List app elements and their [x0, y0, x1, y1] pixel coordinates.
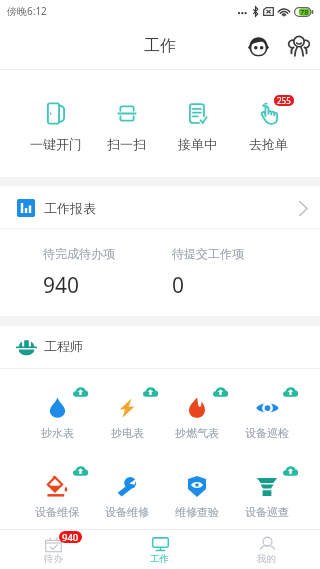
- staticText: 待完成待办项: [43, 246, 115, 261]
- button[interactable]: 设备维保: [22, 476, 92, 519]
- staticText: 抄燃气表: [175, 426, 219, 440]
- button[interactable]: 维修查验: [162, 476, 232, 519]
- staticText: 78: [300, 7, 309, 17]
- button[interactable]: 一键开门: [20, 70, 91, 152]
- button[interactable]: 设备维修: [92, 476, 162, 519]
- staticText: 设备巡查: [245, 505, 289, 519]
- button[interactable]: 设备巡检: [232, 397, 302, 440]
- staticText: 工作报表: [44, 200, 96, 216]
- staticText: 去抢单: [249, 136, 288, 152]
- staticText: 抄电表: [111, 426, 144, 440]
- staticText: 傍晚6:12: [7, 4, 47, 18]
- staticText: 待提交工作项: [172, 246, 244, 261]
- staticText: 255: [277, 95, 291, 106]
- button[interactable]: 接单中: [162, 70, 233, 152]
- staticText: 940: [43, 271, 80, 300]
- staticText: 待办: [44, 553, 63, 565]
- button[interactable]: 工作: [106, 530, 213, 569]
- staticText: 维修查验: [175, 505, 219, 519]
- staticText: 工程师: [44, 338, 83, 354]
- button[interactable]: 940: [0, 530, 106, 569]
- staticText: 工作: [144, 36, 176, 56]
- button[interactable]: 团队: [284, 31, 314, 61]
- staticText: 940: [62, 531, 79, 543]
- staticText: 设备维修: [105, 505, 149, 519]
- button[interactable]: 个人资料: [243, 31, 273, 61]
- button[interactable]: 扫一扫: [91, 70, 162, 152]
- staticText: 接单中: [178, 136, 217, 152]
- button[interactable]: 工作报表: [0, 186, 320, 228]
- staticText: 抄水表: [41, 426, 74, 440]
- staticText: 设备维保: [35, 505, 79, 519]
- staticText: 一键开门: [30, 136, 82, 152]
- staticText: 扫一扫: [107, 136, 146, 152]
- button[interactable]: 255: [233, 70, 304, 152]
- staticText: 工作: [150, 553, 169, 565]
- button[interactable]: 设备巡查: [232, 476, 302, 519]
- staticText: 0: [172, 271, 185, 300]
- staticText: 我的: [257, 553, 276, 565]
- staticText: 设备巡检: [245, 426, 289, 440]
- button[interactable]: 抄电表: [92, 397, 162, 440]
- button[interactable]: 抄水表: [22, 397, 92, 440]
- button[interactable]: 抄燃气表: [162, 397, 232, 440]
- button[interactable]: 我的: [213, 530, 320, 569]
